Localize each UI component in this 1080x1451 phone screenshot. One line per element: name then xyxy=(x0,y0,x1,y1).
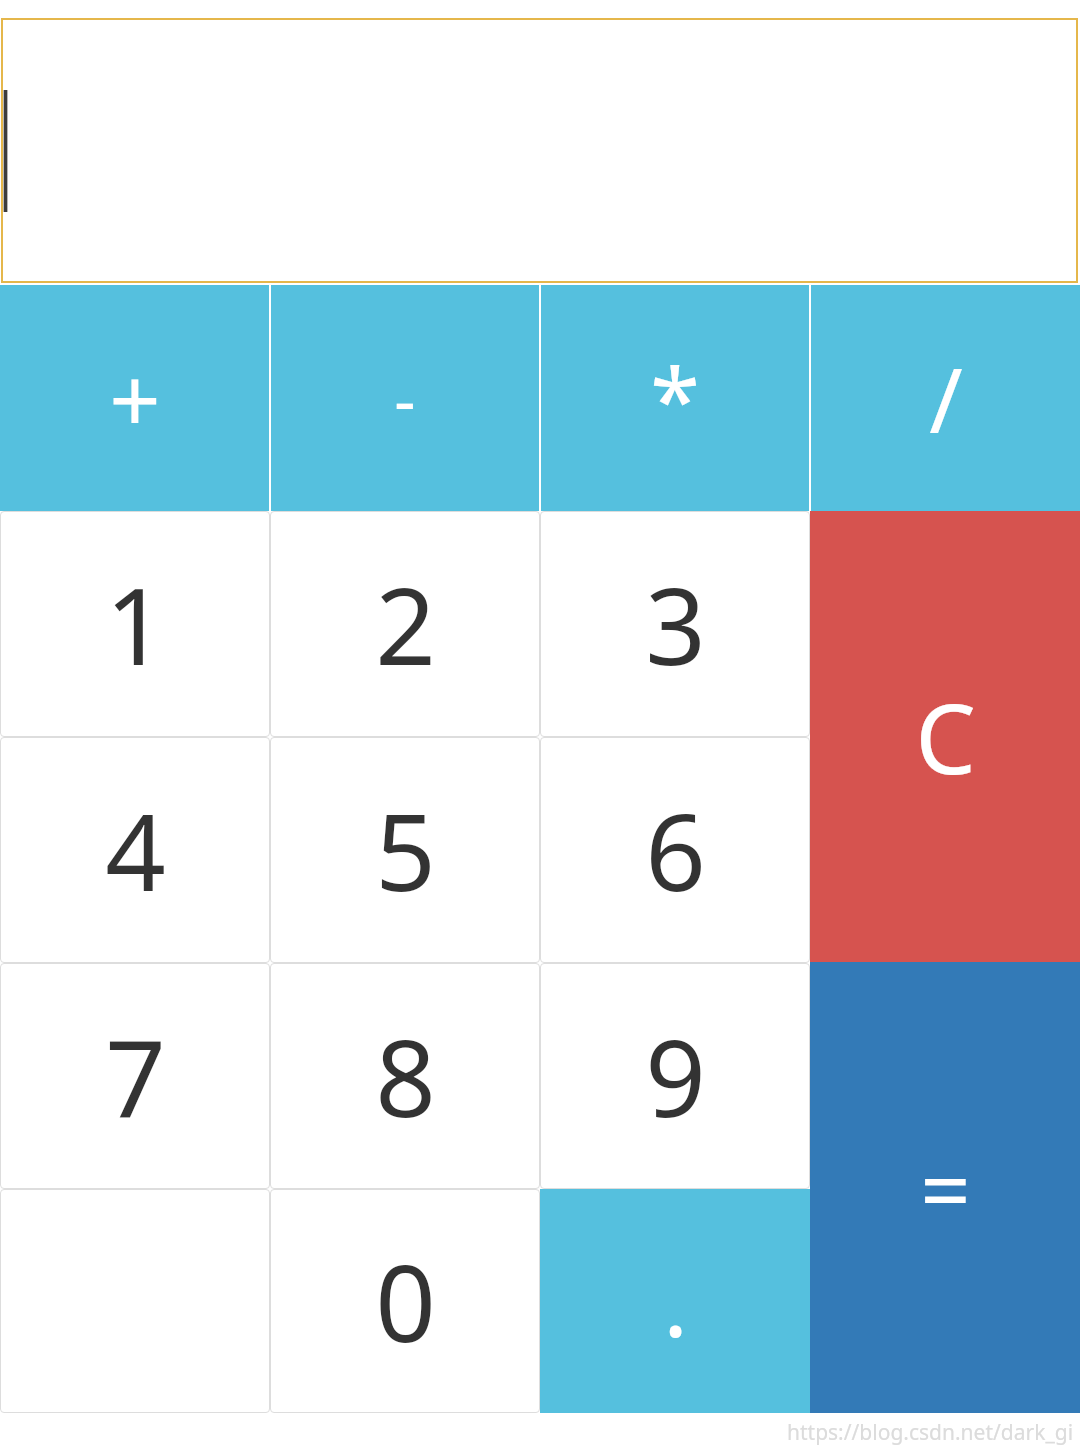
button[interactable]: 0 xyxy=(270,1189,540,1413)
staticText: 0 xyxy=(375,1229,436,1373)
button[interactable]: / xyxy=(811,285,1080,511)
button[interactable]: C xyxy=(810,511,1080,962)
button[interactable]: - xyxy=(271,285,539,511)
button[interactable]: 1 xyxy=(0,511,270,737)
button[interactable]: 8 xyxy=(270,963,540,1189)
staticText: 3 xyxy=(645,552,706,696)
button[interactable]: = xyxy=(810,962,1080,1413)
button[interactable] xyxy=(0,1189,270,1413)
staticText: 1 xyxy=(105,552,166,696)
button[interactable]: 5 xyxy=(270,737,540,963)
staticText: = xyxy=(920,1128,971,1248)
staticText: 6 xyxy=(645,778,706,922)
button[interactable]: 3 xyxy=(540,511,810,737)
staticText: - xyxy=(394,353,416,443)
staticText: C xyxy=(915,671,976,802)
button[interactable]: * xyxy=(541,285,809,511)
staticText: 8 xyxy=(375,1004,436,1148)
button[interactable]: + xyxy=(0,285,269,511)
staticText: 2 xyxy=(375,552,436,696)
button[interactable]: Expression input xyxy=(1,18,1078,283)
button[interactable]: . xyxy=(540,1189,810,1413)
staticText: . xyxy=(663,1239,688,1364)
staticText: * xyxy=(650,337,700,460)
staticText: 9 xyxy=(645,1004,706,1148)
staticText: https://blog.csdn.net/dark_gi xyxy=(787,1418,1074,1447)
staticText: / xyxy=(929,337,963,460)
button[interactable]: 7 xyxy=(0,963,270,1189)
button[interactable]: 2 xyxy=(270,511,540,737)
button[interactable]: 9 xyxy=(540,963,810,1189)
staticText: 4 xyxy=(105,778,166,922)
button[interactable]: 6 xyxy=(540,737,810,963)
staticText: 5 xyxy=(375,778,436,922)
staticText: 7 xyxy=(105,1004,166,1148)
button[interactable]: 4 xyxy=(0,737,270,963)
staticText: + xyxy=(109,337,161,460)
